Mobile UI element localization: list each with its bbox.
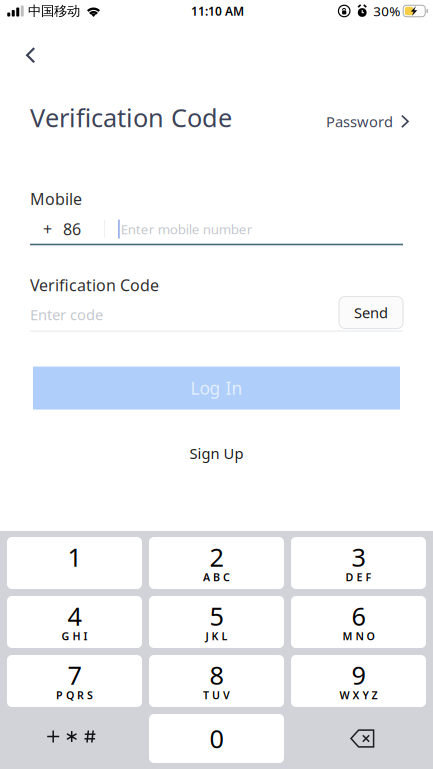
staticText: Send [354,303,388,322]
staticText: 6 [351,599,365,633]
staticText: 1 [67,540,81,574]
button[interactable]: 6 [291,596,426,648]
staticText: A B C [203,570,230,584]
staticText: Verification Code [30,274,159,295]
button[interactable]: 8 [149,655,284,707]
staticText: 2 [209,540,223,574]
button[interactable]: Delete [291,714,426,763]
button[interactable]: 3 [291,537,426,589]
staticText: Enter mobile number [121,220,253,238]
button[interactable]: Send [339,298,403,330]
staticText: 3 [351,540,365,574]
button[interactable]: Sign Up [173,436,259,470]
staticText: M N O [342,629,374,643]
button[interactable]: 9 [291,655,426,707]
button[interactable]: Symbols [7,714,142,763]
staticText: Password [326,112,393,131]
button[interactable]: 7 [7,655,142,707]
staticText: 5 [209,599,223,633]
button[interactable]: 5 [149,596,284,648]
staticText: 9 [351,658,365,692]
staticText: + [43,218,52,240]
button[interactable]: Password [326,107,409,136]
staticText: 中国移动 [28,3,80,19]
staticText: 7 [67,658,81,692]
button[interactable]: Log In [33,366,400,409]
staticText: Verification Code [30,100,232,134]
staticText: W X Y Z [339,688,377,702]
button[interactable]: 1 [7,537,142,589]
staticText: J K L [205,629,227,643]
staticText: Sign Up [189,443,243,463]
staticText: 86 [63,218,81,240]
staticText: Enter code [30,305,103,324]
staticText: T U V [203,688,230,702]
staticText: 30% [373,2,400,20]
button[interactable]: 4 [7,596,142,648]
staticText: 8 [209,658,223,692]
staticText: D E F [345,570,371,584]
staticText: Log In [190,376,242,399]
button[interactable]: 2 [149,537,284,589]
staticText: 4 [67,599,81,633]
staticText: Mobile [30,188,82,209]
staticText: G H I [61,629,87,643]
button[interactable]: 0 [149,714,284,763]
staticText: P Q R S [56,688,93,702]
staticText: 11:10 AM [191,3,244,19]
button[interactable]: Back [0,39,51,71]
staticText: 0 [209,722,223,755]
